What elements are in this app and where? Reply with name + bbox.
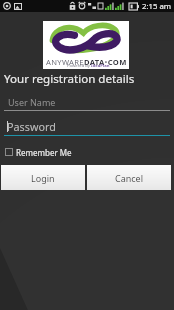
staticText: Your registration details [4, 71, 135, 87]
button[interactable]: Login [1, 165, 85, 190]
button[interactable]: Password [4, 117, 170, 136]
staticText: Password [7, 119, 56, 134]
staticText: Remember Me [16, 147, 72, 158]
staticText: Login [31, 172, 55, 184]
staticText: Cancel [115, 172, 144, 184]
staticText: ANYWAREDATA•COM [46, 57, 127, 67]
button[interactable]: User Name [4, 92, 170, 111]
staticText: 2:15 am [142, 1, 172, 12]
staticText: Powered by IdeaPlan [67, 63, 110, 69]
button[interactable]: Remember Me [3, 145, 67, 159]
staticText: User Name [8, 96, 56, 108]
button[interactable]: Cancel [87, 165, 171, 190]
